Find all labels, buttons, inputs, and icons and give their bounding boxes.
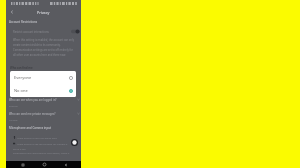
staticText: Everyone bbox=[14, 75, 32, 80]
staticText: Allow others to hear me speak here bbox=[17, 136, 57, 139]
button[interactable]: Toggle microphone and camera bbox=[69, 137, 79, 147]
staticText: Who can find me bbox=[10, 66, 33, 70]
staticText: Permissions are controlled by your devic… bbox=[13, 151, 70, 154]
staticText: Who can send me private messages? bbox=[9, 112, 56, 116]
staticText: Microphone and Camera input bbox=[9, 126, 52, 130]
button[interactable]: Back bbox=[7, 7, 17, 17]
button[interactable]: Home bbox=[39, 161, 49, 168]
button[interactable]: Back bbox=[61, 161, 71, 168]
staticText: No one bbox=[14, 88, 28, 93]
button[interactable]: Restrict account interactions bbox=[6, 28, 81, 35]
staticText: Allow others to see me through my camera… bbox=[17, 142, 68, 145]
button[interactable]: Who can send me private messages? bbox=[6, 110, 81, 117]
staticText: When this setting is enabled, the accoun… bbox=[13, 38, 75, 57]
staticText: No one bbox=[9, 118, 18, 121]
staticText: Account Restrictions bbox=[9, 20, 38, 24]
staticText: am in a call bbox=[13, 147, 26, 150]
button[interactable]: Who can see when you are logged in? bbox=[6, 96, 81, 103]
staticText: Who can see when you are logged in? bbox=[9, 98, 57, 102]
button[interactable]: Recents bbox=[18, 161, 28, 168]
staticText: Restrict account interactions bbox=[13, 30, 49, 34]
staticText: Friends bbox=[9, 104, 18, 107]
staticText: Privacy bbox=[37, 10, 50, 15]
button[interactable]: Everyone bbox=[10, 71, 76, 84]
button[interactable]: No one bbox=[10, 84, 76, 97]
